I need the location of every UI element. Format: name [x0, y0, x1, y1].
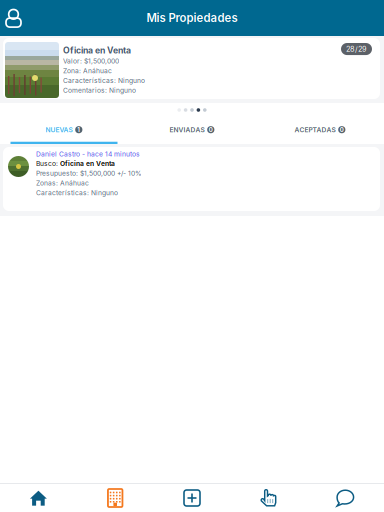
staticText: Presupuesto: $1,500,000 +/- 10%: [36, 169, 142, 177]
button[interactable]: ACEPTADAS: [256, 122, 384, 144]
staticText: ACEPTADAS: [295, 126, 336, 134]
staticText: Características: Ninguno: [36, 189, 118, 197]
staticText: Valor: $1,500,000: [63, 57, 119, 65]
staticText: 0: [340, 126, 344, 133]
staticText: Zonas: Anáhuac: [36, 179, 89, 187]
staticText: Comentarios: Ninguno: [63, 86, 136, 94]
staticText: 28/29: [346, 45, 367, 53]
staticText: Oficina en Venta: [63, 45, 131, 55]
staticText: 1: [77, 126, 80, 133]
button[interactable]: Add: [154, 484, 230, 512]
staticText: 0: [209, 126, 213, 133]
button[interactable]: Profile: [0, 0, 40, 36]
staticText: NUEVAS: [46, 126, 73, 134]
staticText: ENVIADAS: [170, 126, 205, 134]
staticText: Mis Propiedades: [146, 11, 237, 25]
button[interactable]: Requests: [230, 484, 307, 512]
button[interactable]: Daniel Castro - hace 14 minutos: [0, 144, 384, 211]
staticText: Busco: Oficina en Venta: [36, 160, 115, 168]
staticText: Daniel Castro - hace 14 minutos: [36, 150, 140, 158]
button[interactable]: Home: [0, 484, 77, 512]
button[interactable]: NUEVAS: [0, 122, 128, 144]
button[interactable]: Messages: [307, 484, 384, 512]
button[interactable]: Oficina en Venta: [0, 38, 384, 99]
staticText: Características: Ninguno: [63, 77, 145, 85]
button[interactable]: Properties: [77, 484, 154, 512]
staticText: Zona: Anáhuac: [63, 67, 112, 75]
button[interactable]: ENVIADAS: [128, 122, 256, 144]
